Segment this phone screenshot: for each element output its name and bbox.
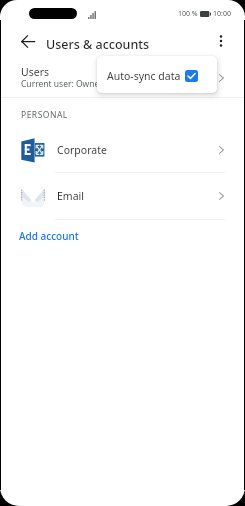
button[interactable]: Add account [0,222,245,250]
staticText: Users [21,65,49,79]
staticText: Corporate [57,143,107,157]
button[interactable]: Back [16,29,40,53]
button[interactable]: Email [0,175,245,216]
staticText: Users & accounts [46,36,150,53]
button[interactable]: More options [209,29,233,53]
staticText: Add account [19,229,79,243]
staticText: 100 % [178,9,198,19]
button[interactable]: Auto-sync data [97,56,217,93]
button: PERSONAL [21,109,68,121]
staticText: Current user: Owner [21,78,103,90]
staticText: Auto-sync data [107,69,181,83]
staticText: 10:00 [213,9,231,19]
button[interactable]: Corporate [0,129,245,171]
button[interactable]: Users [0,58,245,96]
staticText: Email [57,189,84,203]
